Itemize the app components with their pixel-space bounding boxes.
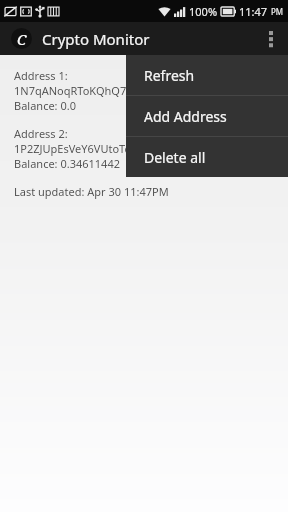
button[interactable]: More options — [254, 22, 288, 55]
staticText: C — [17, 29, 27, 49]
staticText: 1N7qANoqRToKQhQ74Wb2Qd8f — [14, 83, 182, 98]
staticText: 1P2ZJUpEsVeY6VUtoTq5xCw — [14, 141, 159, 156]
staticText: Address 2: — [14, 126, 68, 141]
button[interactable]: Refresh — [126, 55, 288, 95]
button[interactable]: Delete all — [126, 137, 288, 177]
staticText: Address 1: — [14, 68, 68, 83]
staticText: Delete all — [144, 148, 206, 167]
staticText: Balance: 0.34611442 — [14, 156, 120, 171]
staticText: Last updated: Apr 30 11:47PM — [14, 184, 169, 199]
staticText: PM — [271, 6, 284, 17]
staticText: Balance: 0.0 — [14, 98, 76, 113]
staticText: 100% — [189, 4, 218, 19]
staticText: Add Address — [144, 107, 227, 126]
staticText: Refresh — [144, 66, 195, 85]
staticText: 11:47 — [239, 4, 268, 19]
staticText: Crypto Monitor — [42, 29, 150, 49]
button[interactable]: Add Address — [126, 96, 288, 136]
